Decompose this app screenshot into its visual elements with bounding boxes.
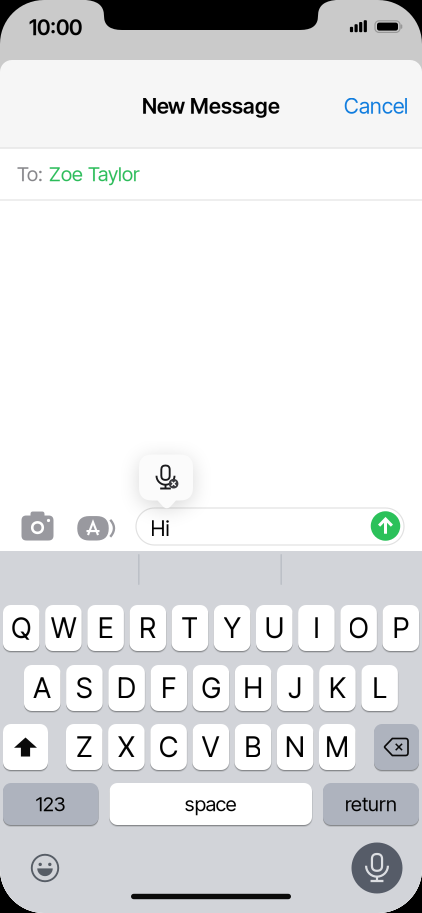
button[interactable]: M bbox=[319, 724, 356, 770]
staticText: E bbox=[98, 611, 113, 644]
staticText: Z bbox=[76, 730, 92, 763]
button[interactable]: P bbox=[382, 605, 419, 651]
staticText: F bbox=[161, 671, 176, 704]
staticText: S bbox=[76, 671, 93, 704]
staticText: To: bbox=[17, 162, 43, 186]
button[interactable]: Y bbox=[214, 605, 250, 651]
staticText: J bbox=[288, 671, 302, 704]
staticText: N bbox=[285, 730, 305, 763]
button[interactable]: I bbox=[298, 605, 335, 651]
staticText: O bbox=[349, 611, 369, 644]
staticText: C bbox=[159, 730, 178, 763]
staticText: Hi bbox=[150, 516, 169, 541]
button[interactable]: Dictation bbox=[351, 842, 402, 893]
button[interactable]: T bbox=[172, 605, 208, 651]
button[interactable]: L bbox=[361, 665, 398, 711]
button[interactable]: D bbox=[108, 665, 145, 711]
staticText: return bbox=[345, 792, 397, 816]
button[interactable]: Send bbox=[371, 511, 400, 541]
button[interactable]: A bbox=[24, 665, 60, 711]
staticText: 10:00 bbox=[29, 15, 82, 40]
staticText: K bbox=[329, 671, 346, 704]
button[interactable]: W bbox=[45, 605, 82, 651]
staticText: L bbox=[373, 671, 387, 704]
staticText: U bbox=[265, 611, 284, 644]
button[interactable]: E bbox=[87, 605, 124, 651]
staticText: P bbox=[393, 611, 409, 644]
button[interactable]: Shift bbox=[3, 724, 48, 770]
button[interactable]: To: bbox=[0, 149, 422, 199]
button[interactable]: F bbox=[150, 665, 187, 711]
button[interactable]: Delete bbox=[374, 724, 419, 770]
button[interactable]: U bbox=[256, 605, 293, 651]
button[interactable]: Emoji bbox=[32, 855, 58, 881]
button[interactable]: Z bbox=[66, 724, 103, 770]
staticText: space bbox=[185, 792, 237, 816]
button[interactable]: Dismiss dictation bbox=[139, 454, 193, 508]
staticText: X bbox=[118, 730, 135, 763]
button[interactable]: Apps bbox=[74, 516, 112, 540]
staticText: G bbox=[201, 671, 220, 704]
staticText: Y bbox=[224, 611, 241, 644]
button[interactable]: return bbox=[323, 783, 419, 825]
button[interactable]: space bbox=[109, 783, 312, 825]
staticText: V bbox=[202, 730, 220, 763]
button[interactable]: K bbox=[319, 665, 356, 711]
staticText: Q bbox=[11, 611, 31, 644]
staticText: A bbox=[33, 671, 51, 704]
button[interactable]: C bbox=[150, 724, 187, 770]
staticText: M bbox=[325, 730, 349, 763]
staticText: 123 bbox=[36, 792, 66, 816]
button[interactable]: G bbox=[193, 665, 229, 711]
button[interactable]: O bbox=[340, 605, 377, 651]
button[interactable]: V bbox=[192, 724, 229, 770]
staticText: W bbox=[51, 611, 76, 644]
button[interactable]: Camera bbox=[20, 510, 54, 542]
button[interactable]: R bbox=[129, 605, 166, 651]
button[interactable]: J bbox=[277, 665, 314, 711]
button[interactable]: B bbox=[235, 724, 271, 770]
button[interactable]: X bbox=[108, 724, 145, 770]
staticText: R bbox=[139, 611, 156, 644]
staticText: New Message bbox=[142, 93, 280, 119]
staticText: T bbox=[181, 611, 198, 644]
staticText: Zoe Taylor bbox=[49, 162, 140, 186]
button[interactable]: H bbox=[235, 665, 271, 711]
staticText: B bbox=[244, 730, 261, 763]
button[interactable]: Cancel bbox=[340, 93, 412, 119]
button[interactable]: N bbox=[277, 724, 313, 770]
button[interactable]: Hi bbox=[136, 508, 404, 545]
button[interactable]: S bbox=[66, 665, 103, 711]
staticText: H bbox=[244, 671, 263, 704]
button[interactable]: Q bbox=[3, 605, 39, 651]
staticText: Cancel bbox=[344, 93, 408, 119]
staticText: D bbox=[117, 671, 136, 704]
staticText: I bbox=[313, 611, 319, 644]
button[interactable]: 123 bbox=[3, 783, 98, 825]
